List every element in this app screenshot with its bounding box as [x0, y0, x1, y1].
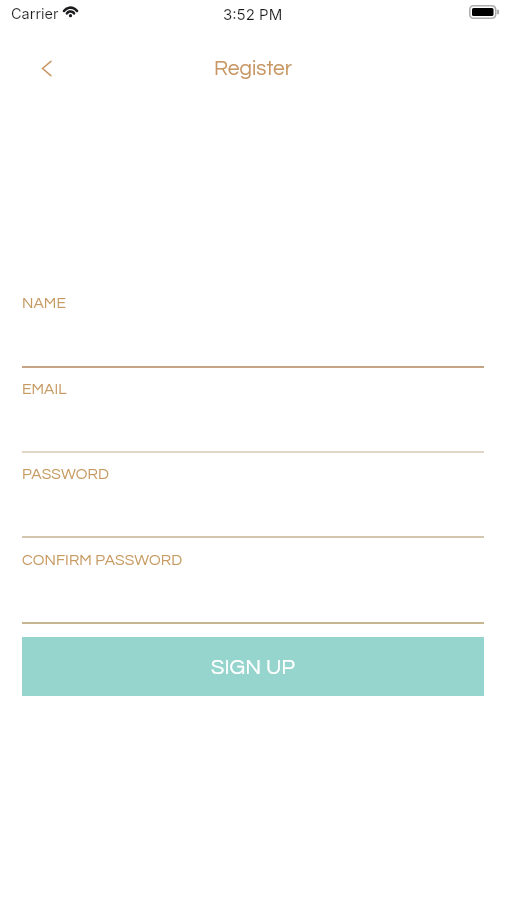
button[interactable]: PASSWORD — [22, 458, 484, 538]
staticText: PASSWORD — [22, 466, 109, 482]
staticText: SIGN UP — [211, 656, 296, 678]
button[interactable]: NAME — [22, 287, 484, 368]
button[interactable]: Back — [26, 48, 66, 88]
staticText: CONFIRM PASSWORD — [22, 552, 183, 568]
staticText: NAME — [22, 295, 66, 311]
staticText: Carrier — [11, 5, 59, 23]
button[interactable]: CONFIRM PASSWORD — [22, 544, 484, 624]
staticText: Register — [214, 58, 292, 80]
button[interactable]: EMAIL — [22, 373, 484, 453]
staticText: EMAIL — [22, 381, 67, 397]
button[interactable]: SIGN UP — [22, 637, 484, 696]
staticText: 3:52 PM — [223, 5, 283, 23]
